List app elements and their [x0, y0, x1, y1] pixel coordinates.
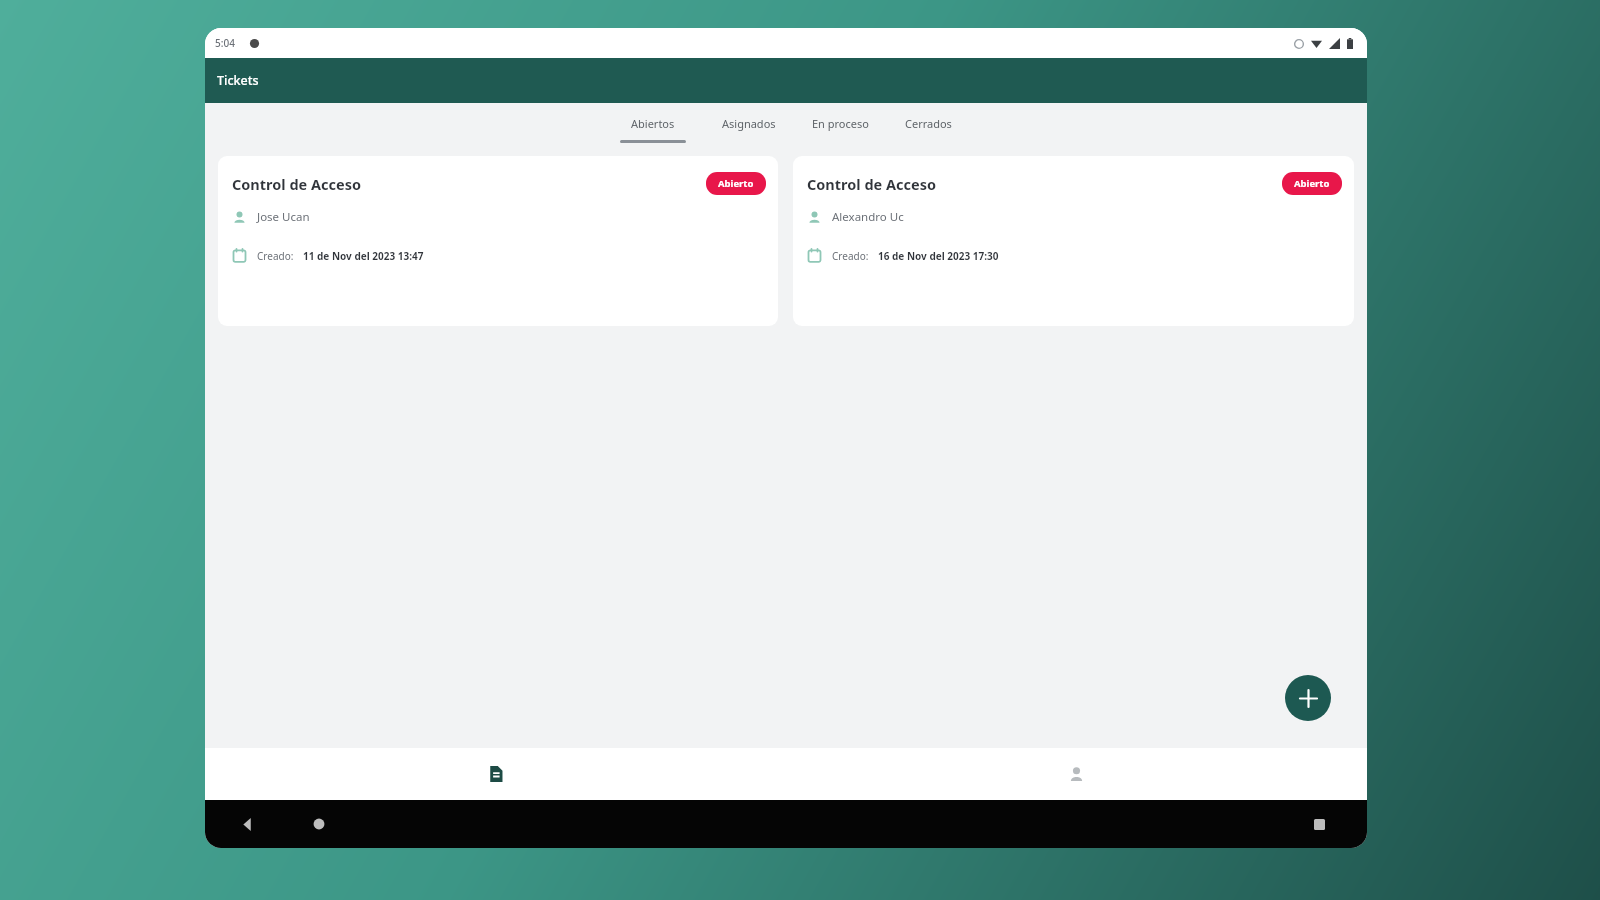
button[interactable]: Abierto [1282, 172, 1342, 195]
button[interactable]: Abiertos [608, 110, 698, 149]
staticText: Abierto [1294, 177, 1330, 190]
staticText: Creado: [257, 249, 294, 263]
other: Recents [1314, 819, 1325, 830]
button[interactable]: Abierto [706, 172, 766, 195]
button[interactable]: Control de Acceso [793, 156, 1354, 326]
staticText: Tickets [217, 72, 259, 89]
other: Home [313, 818, 325, 830]
staticText: Control de Acceso [232, 174, 362, 194]
button[interactable]: Perfil [786, 748, 1367, 800]
button[interactable]: Nuevo ticket [1285, 675, 1331, 721]
staticText: En proceso [812, 116, 869, 131]
staticText: Alexandro Uc [832, 209, 904, 225]
staticText: 16 de Nov del 2023 17:30 [878, 249, 999, 263]
button[interactable]: Cerrados [893, 110, 964, 149]
button[interactable]: En proceso [800, 110, 881, 149]
button[interactable]: Asignados [710, 110, 788, 149]
staticText: Asignados [722, 116, 776, 131]
button[interactable]: Tickets [205, 748, 786, 800]
staticText: Abiertos [631, 116, 675, 131]
staticText: Control de Acceso [807, 174, 937, 194]
staticText: Jose Ucan [257, 209, 310, 225]
other: Back [241, 818, 254, 831]
staticText: Creado: [832, 249, 869, 263]
button[interactable]: Control de Acceso [218, 156, 778, 326]
staticText: 11 de Nov del 2023 13:47 [303, 249, 424, 263]
staticText: Abierto [718, 177, 754, 190]
staticText: 5:04 [215, 36, 235, 50]
staticText: Cerrados [905, 116, 952, 131]
